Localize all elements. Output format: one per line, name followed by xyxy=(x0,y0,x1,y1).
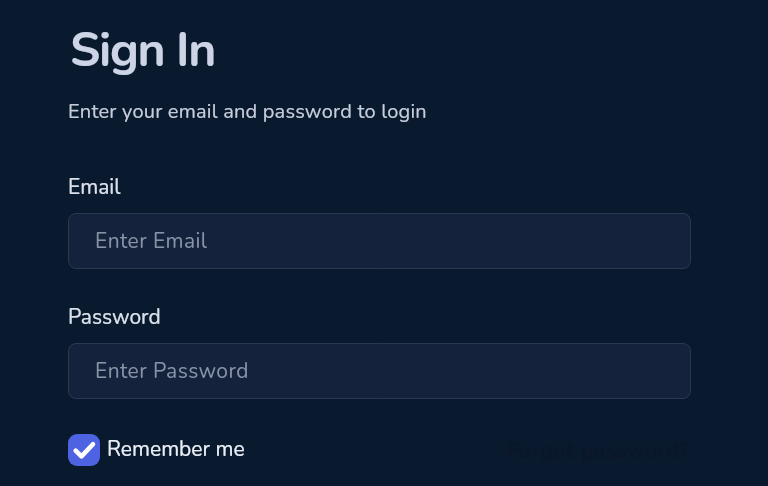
staticText: Enter Email xyxy=(95,227,208,256)
staticText: Enter Password xyxy=(95,357,249,386)
staticText: Enter your email and password to login xyxy=(68,98,427,125)
staticText: Sign In xyxy=(70,17,216,82)
staticText: Password xyxy=(68,303,161,332)
staticText: Remember me xyxy=(107,435,245,464)
staticText: Email xyxy=(68,173,121,202)
